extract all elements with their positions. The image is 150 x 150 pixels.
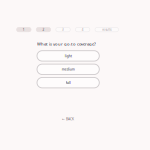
staticText: results	[102, 28, 111, 32]
button[interactable]: 1	[17, 27, 31, 32]
button[interactable]: results	[95, 27, 118, 32]
staticText: 2	[42, 28, 44, 32]
staticText: full	[66, 80, 71, 85]
staticText: light	[65, 54, 72, 58]
staticText: ← BACK	[62, 117, 74, 121]
staticText: 4	[82, 28, 84, 32]
button[interactable]: light	[37, 51, 99, 61]
button[interactable]: 4	[75, 27, 90, 32]
button[interactable]: full	[37, 77, 99, 88]
staticText: 1	[23, 28, 25, 32]
button[interactable]: ← BACK	[57, 115, 79, 122]
button[interactable]: 2	[36, 27, 51, 32]
staticText: 3	[62, 28, 64, 32]
staticText: medium	[62, 67, 75, 71]
button[interactable]: 3	[56, 27, 70, 32]
staticText: What is your go-to coverage?	[37, 41, 96, 47]
button[interactable]: medium	[37, 64, 99, 74]
